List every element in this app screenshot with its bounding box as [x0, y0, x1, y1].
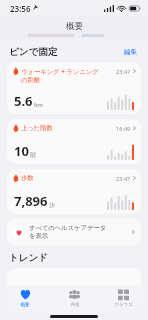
staticText: 共有 [70, 302, 80, 308]
staticText: 上った階数 [21, 124, 114, 132]
staticText: ウォーキング + ランニング の距離 [21, 67, 114, 84]
staticText: 概要 [20, 302, 30, 308]
button[interactable]: 概要 [0, 285, 50, 312]
staticText: 23:47 [116, 175, 131, 183]
button[interactable]: 共有 [50, 285, 99, 312]
staticText: 階 [30, 151, 36, 159]
button[interactable]: 上った階数 [7, 119, 141, 164]
staticText: 概要 [66, 21, 83, 32]
staticText: トレンド [9, 252, 48, 264]
staticText: 16:49 [116, 125, 131, 133]
staticText: 編集 [124, 48, 137, 56]
staticText: 10 [14, 142, 29, 160]
staticText: 歩数 [21, 174, 114, 182]
staticText: 5.6 [14, 92, 33, 110]
button[interactable]: ウォーキング + ランニング の距離 [7, 62, 141, 114]
staticText: km [34, 101, 44, 109]
staticText: すべてのヘルスケアデータ を表示 [29, 224, 132, 240]
staticText: 23:47 [116, 68, 131, 76]
staticText: 23:56 [10, 3, 31, 14]
button[interactable]: 歩数 [7, 169, 141, 214]
button[interactable]: ブラウズ [99, 285, 148, 312]
button[interactable] [7, 268, 141, 308]
staticText: 歩 [49, 201, 55, 209]
button[interactable]: 編集 [122, 46, 139, 58]
staticText: ピンで固定 [9, 46, 58, 58]
staticText: ブラウズ [114, 302, 133, 308]
staticText: 7,896 [14, 192, 48, 210]
button[interactable]: すべてのヘルスケアデータ を表示 [7, 219, 141, 245]
